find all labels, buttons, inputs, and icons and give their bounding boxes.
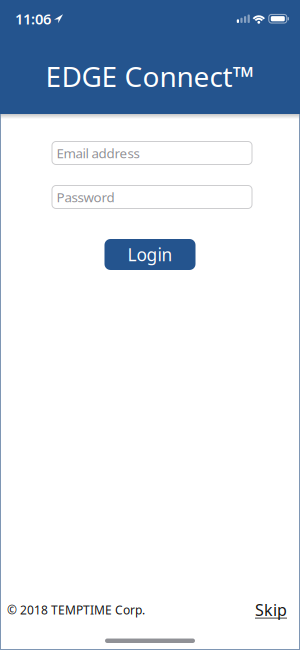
staticText: Login [127, 243, 172, 266]
staticText: Password [56, 188, 114, 206]
button[interactable]: Email address [51, 141, 252, 165]
button[interactable]: Login [104, 239, 195, 270]
button[interactable]: Password [51, 185, 252, 209]
button[interactable]: Skip [255, 599, 287, 620]
staticText: EDGE Connect™ [45, 57, 254, 95]
staticText: © 2018 TEMPTIME Corp. [7, 602, 145, 618]
staticText: 11:06 [15, 9, 51, 28]
staticText: Email address [56, 144, 139, 162]
staticText: Skip [255, 599, 287, 620]
